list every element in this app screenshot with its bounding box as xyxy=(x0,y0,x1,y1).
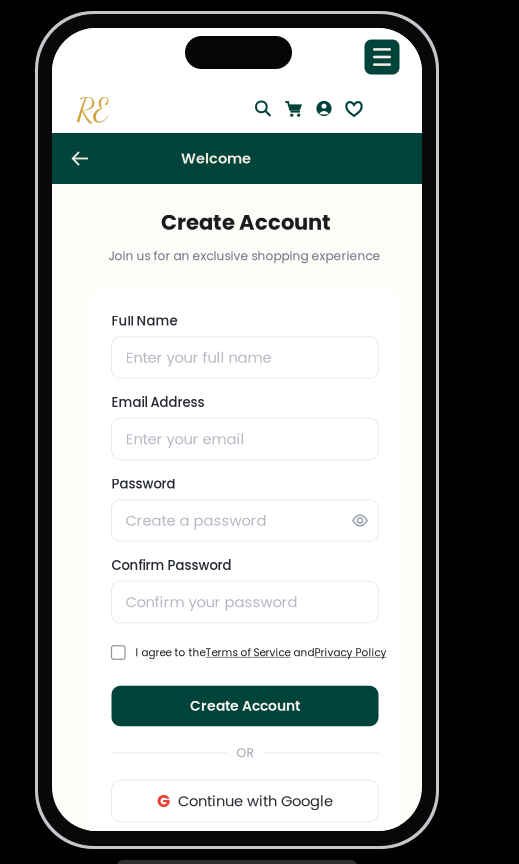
staticText: Create Account xyxy=(161,208,331,237)
staticText: Continue with Google xyxy=(178,791,333,811)
staticText: Confirm your password xyxy=(125,592,297,612)
staticText: Join us for an exclusive shopping experi… xyxy=(108,247,380,264)
staticText: Create a password xyxy=(125,510,266,531)
button[interactable]: Cart xyxy=(285,100,302,117)
button[interactable]: Search xyxy=(255,100,271,117)
button[interactable]: Menu xyxy=(364,39,399,74)
button[interactable]: Back xyxy=(63,141,97,175)
staticText: Full Name xyxy=(111,312,177,330)
staticText: Welcome xyxy=(181,148,251,169)
staticText: Create Account xyxy=(190,696,300,716)
staticText: RE xyxy=(76,92,108,128)
staticText: Enter your full name xyxy=(125,347,271,368)
staticText: I agree to theTerms of Service andPrivac… xyxy=(135,645,386,660)
button[interactable]: G xyxy=(111,780,378,822)
button[interactable]: Account xyxy=(316,101,332,116)
button[interactable]: I agree to theTerms of Service andPrivac… xyxy=(111,642,386,662)
staticText: OR xyxy=(236,744,253,762)
staticText: Confirm Password xyxy=(111,556,231,575)
button[interactable]: Create Account xyxy=(111,686,378,726)
staticText: Email Address xyxy=(111,393,204,412)
staticText: G xyxy=(157,789,170,813)
staticText: Password xyxy=(111,475,175,493)
button[interactable]: Wishlist xyxy=(345,100,363,117)
staticText: Enter your email xyxy=(125,429,244,449)
